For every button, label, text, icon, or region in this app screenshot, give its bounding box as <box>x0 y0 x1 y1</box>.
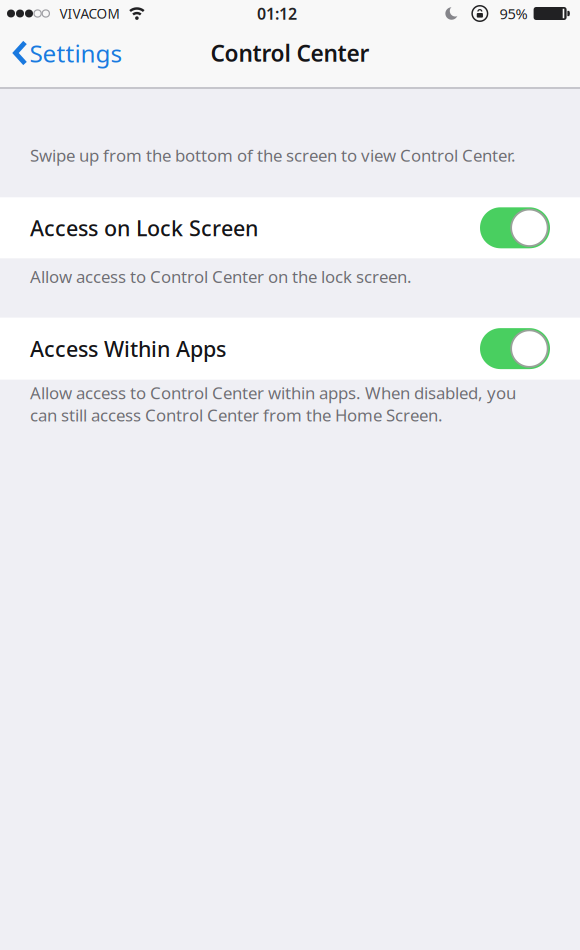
button[interactable]: Back to Settings <box>0 37 122 69</box>
staticText: Settings <box>29 37 122 69</box>
staticText: Access on Lock Screen <box>30 214 258 242</box>
button[interactable]: Access on Lock Screen <box>480 207 550 248</box>
staticText: Swipe up from the bottom of the screen t… <box>30 144 516 166</box>
button[interactable]: Access Within Apps <box>480 328 550 369</box>
staticText: Allow access to Control Center on the lo… <box>30 265 412 288</box>
staticText: Allow access to Control Center within ap… <box>30 382 516 426</box>
staticText: 01:12 <box>257 3 297 24</box>
staticText: VIVACOM <box>59 4 119 23</box>
staticText: Control Center <box>210 38 369 68</box>
staticText: 95% <box>500 4 528 23</box>
staticText: Access Within Apps <box>30 334 226 363</box>
